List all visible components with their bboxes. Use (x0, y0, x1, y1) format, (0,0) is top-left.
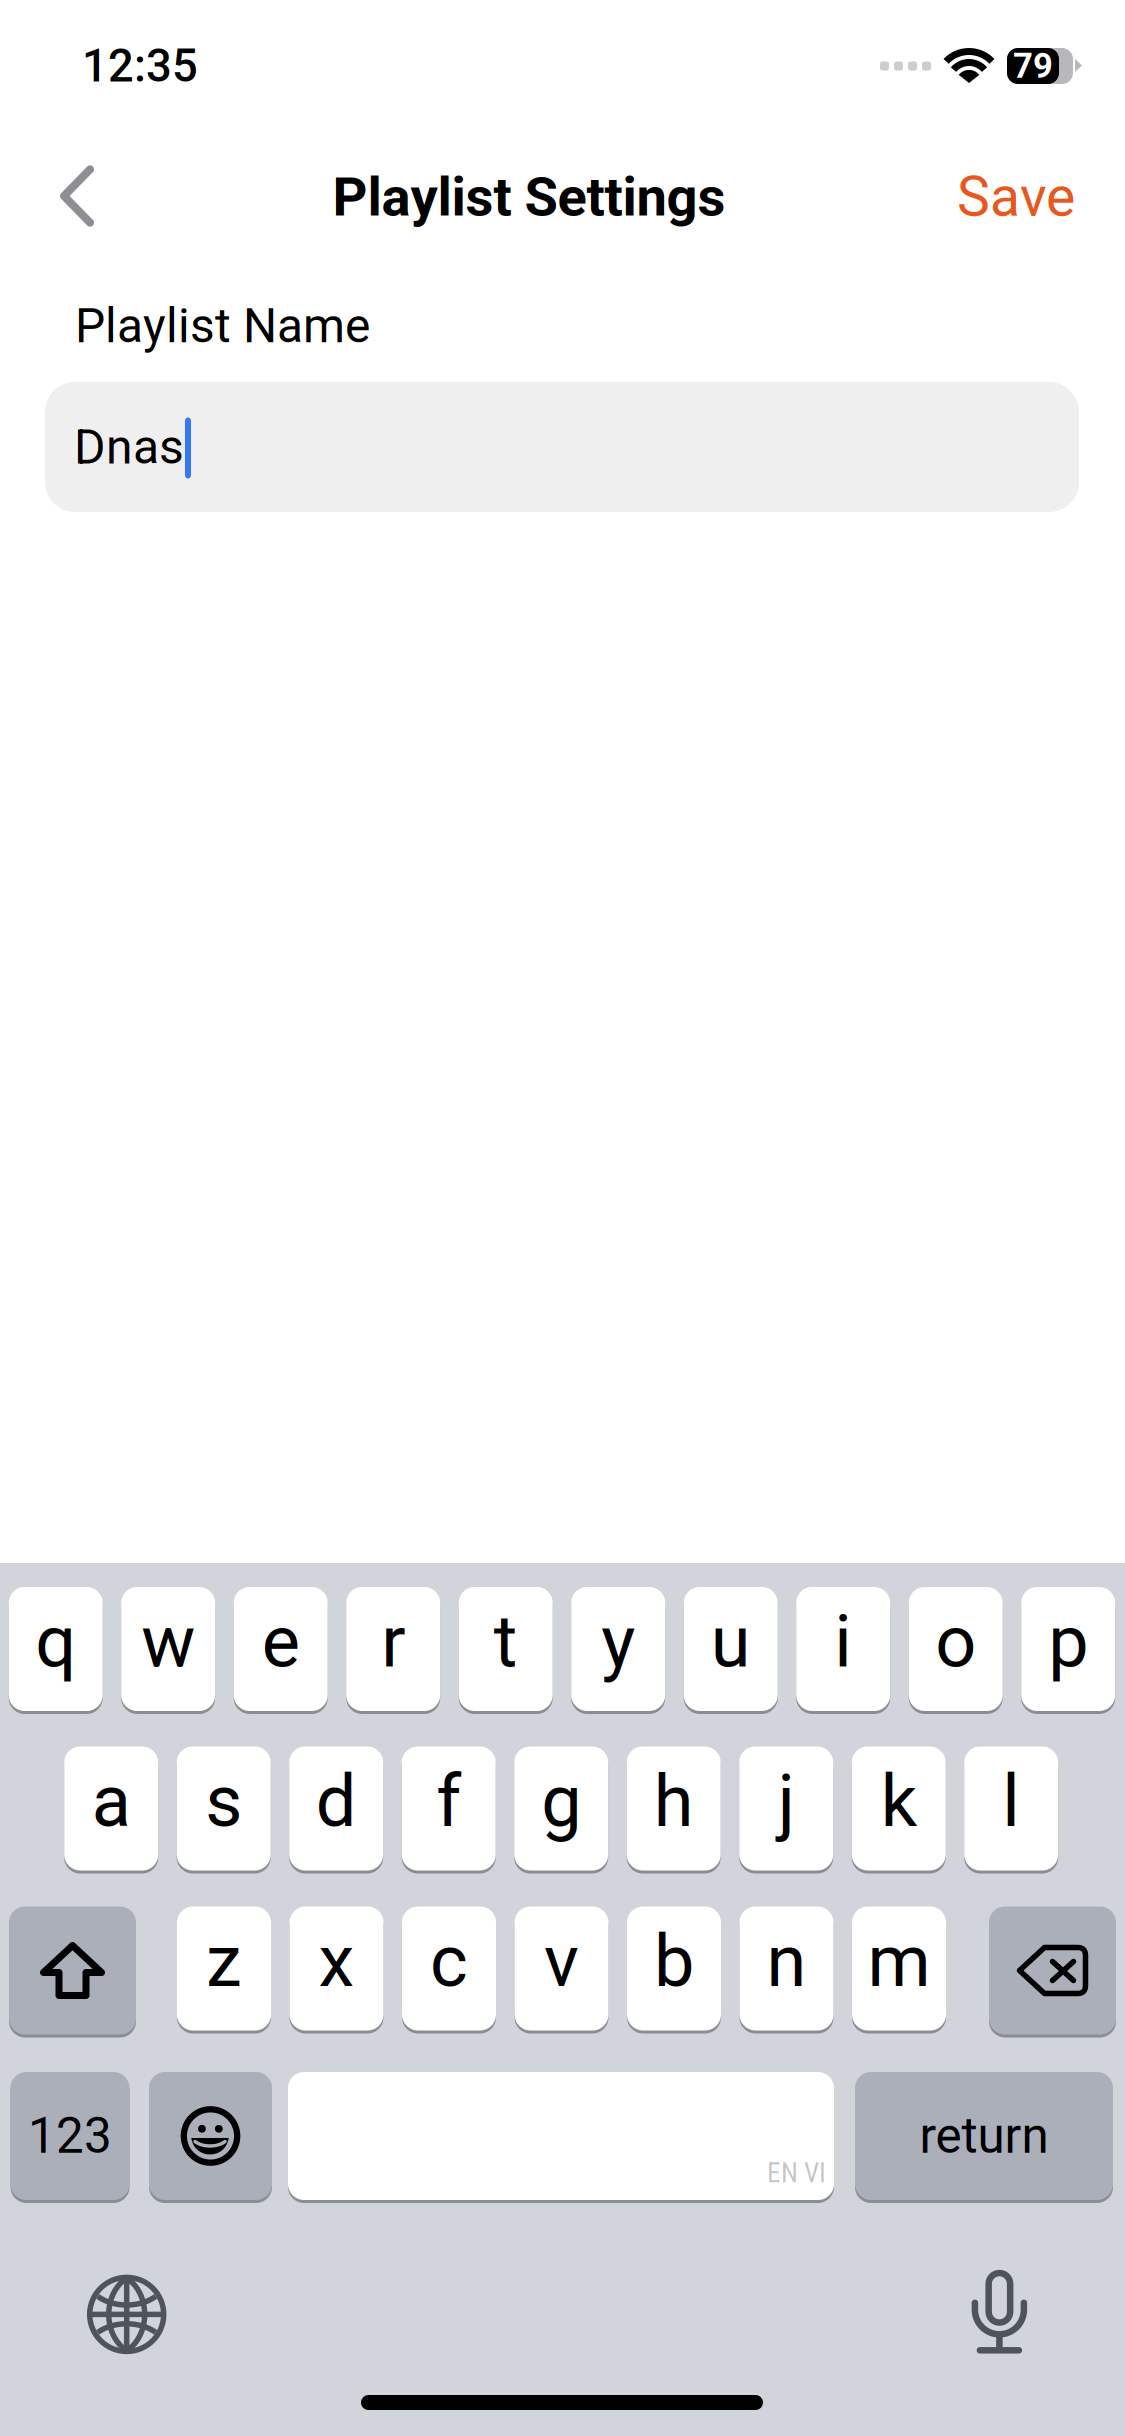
button[interactable]: v (514, 1904, 608, 2032)
button[interactable]: 123 (10, 2070, 129, 2202)
button[interactable]: n (739, 1904, 833, 2032)
button[interactable]: a (64, 1744, 158, 1872)
staticText: i (834, 1600, 852, 1684)
button[interactable]: d (289, 1744, 383, 1872)
staticText: g (541, 1759, 581, 1844)
button[interactable]: q (9, 1585, 103, 1713)
staticText: h (654, 1759, 694, 1844)
button[interactable]: j (739, 1744, 833, 1872)
staticText: t (494, 1600, 518, 1684)
button[interactable]: h (627, 1744, 721, 1872)
staticText: k (881, 1759, 917, 1844)
button[interactable]: e (234, 1585, 328, 1713)
button[interactable]: Dictate (944, 2244, 1054, 2380)
staticText: Playlist Name (75, 298, 370, 354)
staticText: s (205, 1759, 242, 1844)
staticText: f (436, 1759, 461, 1844)
button[interactable]: y (571, 1585, 665, 1713)
button[interactable]: t (459, 1585, 553, 1713)
staticText: 12:35 (82, 39, 198, 92)
staticText: j (778, 1759, 795, 1844)
button[interactable]: Emoji (149, 2070, 272, 2202)
button[interactable]: m (852, 1904, 946, 2032)
button[interactable]: r (346, 1585, 440, 1713)
staticText: a (92, 1759, 131, 1844)
button[interactable]: s (177, 1744, 271, 1872)
staticText: q (35, 1600, 76, 1684)
staticText: b (654, 1919, 694, 2004)
button[interactable]: f (402, 1744, 496, 1872)
button[interactable]: x (289, 1904, 383, 2032)
button[interactable]: i (796, 1585, 890, 1713)
staticText: n (766, 1919, 806, 2004)
button[interactable]: return (855, 2070, 1113, 2202)
button[interactable]: Dnas (45, 382, 1079, 512)
staticText: p (1048, 1600, 1088, 1684)
button[interactable]: l (964, 1744, 1058, 1872)
staticText: v (544, 1919, 579, 2004)
staticText: o (935, 1600, 976, 1684)
staticText: l (1002, 1759, 1020, 1844)
staticText: x (318, 1919, 354, 2004)
staticText: d (316, 1759, 357, 1844)
staticText: return (919, 2107, 1048, 2165)
staticText: c (430, 1919, 468, 2004)
button[interactable]: z (177, 1904, 271, 2032)
staticText: z (206, 1919, 242, 2004)
button[interactable]: Delete (989, 1904, 1116, 2036)
button[interactable]: u (684, 1585, 778, 1713)
staticText: Save (957, 165, 1075, 229)
button[interactable]: k (852, 1744, 946, 1872)
button[interactable]: Shift (9, 1904, 136, 2036)
staticText: 79 (1013, 46, 1053, 86)
button[interactable]: o (909, 1585, 1003, 1713)
staticText: Playlist Settings (332, 165, 725, 229)
staticText: EN VI (767, 2157, 826, 2189)
staticText: m (867, 1919, 930, 2004)
staticText: r (381, 1600, 405, 1684)
button[interactable]: g (514, 1744, 608, 1872)
button[interactable]: p (1021, 1585, 1115, 1713)
button[interactable]: b (627, 1904, 721, 2032)
staticText: e (262, 1600, 300, 1684)
staticText: 123 (28, 2107, 112, 2165)
staticText: Dnas (74, 419, 184, 475)
button[interactable]: Space (288, 2070, 834, 2202)
button[interactable]: c (402, 1904, 496, 2032)
button[interactable]: w (121, 1585, 215, 1713)
staticText: y (601, 1600, 635, 1684)
staticText: u (711, 1600, 751, 1684)
button[interactable]: Save (875, 131, 1075, 263)
button[interactable]: Next keyboard (61, 2248, 193, 2380)
staticText: w (141, 1600, 195, 1684)
button[interactable]: Back (11, 130, 143, 262)
